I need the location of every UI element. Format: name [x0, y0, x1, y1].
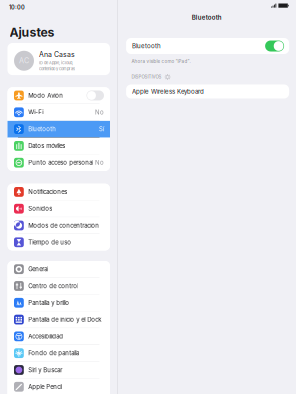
staticText: Fondo de pantalla — [28, 350, 79, 357]
button[interactable]: Fondo de pantalla — [7, 345, 110, 362]
staticText: Modos de concentración — [28, 222, 99, 229]
button[interactable]: Sonidos — [7, 200, 110, 217]
staticText: Ajustes — [9, 25, 54, 40]
button[interactable]: Notificaciones — [7, 184, 110, 200]
staticText: DISPOSITIVOS — [132, 74, 162, 80]
staticText: Apple Wireless Keyboard — [132, 88, 204, 95]
staticText: Pantalla y brillo — [28, 299, 69, 306]
button[interactable]: Modo Avión — [7, 87, 110, 104]
button[interactable]: Wi-Fi — [7, 104, 110, 121]
button[interactable]: Datos móviles — [7, 138, 110, 154]
staticText: Sonidos — [28, 205, 52, 212]
button[interactable]: Pantalla y brillo — [7, 295, 110, 311]
staticText: AC — [19, 56, 29, 65]
staticText: ID de Apple, iCloud, — [39, 60, 73, 65]
button[interactable]: Accesibilidad — [7, 328, 110, 345]
button[interactable]: Modos de concentración — [7, 217, 110, 234]
button[interactable]: AC — [7, 43, 110, 75]
staticText: Bluetooth — [192, 14, 222, 21]
button[interactable]: Punto acceso personal — [7, 154, 110, 171]
staticText: Centro de control — [28, 282, 78, 290]
staticText: Accesibilidad — [28, 333, 63, 340]
button[interactable]: Apple Pencil — [7, 379, 110, 394]
button[interactable]: Pantalla de inicio y el Dock — [7, 311, 110, 328]
staticText: contenido y compras — [39, 66, 75, 71]
button[interactable]: Apple Wireless Keyboard — [126, 84, 289, 98]
button[interactable]: Bluetooth — [126, 38, 289, 54]
button[interactable]: Siri y Buscar — [7, 362, 110, 379]
staticText: Punto acceso personal — [28, 159, 93, 166]
staticText: Ahora visible como “iPad”. — [132, 58, 191, 64]
staticText: Tiempo de uso — [28, 239, 71, 246]
staticText: Bluetooth — [132, 42, 161, 50]
staticText: General — [28, 266, 48, 273]
staticText: Wi-Fi — [28, 109, 43, 116]
staticText: Pantalla de inicio y el Dock — [28, 316, 101, 323]
staticText: Notificaciones — [28, 188, 67, 196]
staticText: 10:00 — [9, 4, 25, 11]
staticText: No — [95, 109, 104, 116]
staticText: Sí — [99, 125, 104, 133]
staticText: Siri y Buscar — [28, 366, 62, 374]
staticText: Modo Avión — [28, 92, 63, 99]
staticText: Apple Pencil — [28, 383, 62, 390]
button[interactable]: Tiempo de uso — [7, 234, 110, 250]
staticText: Ana Casas — [39, 50, 75, 59]
staticText: Bluetooth — [28, 125, 56, 133]
staticText: Datos móviles — [28, 142, 65, 150]
button[interactable]: Bluetooth — [7, 121, 110, 138]
staticText: No — [95, 159, 104, 166]
button[interactable]: General — [7, 261, 110, 278]
button[interactable]: Centro de control — [7, 278, 110, 295]
